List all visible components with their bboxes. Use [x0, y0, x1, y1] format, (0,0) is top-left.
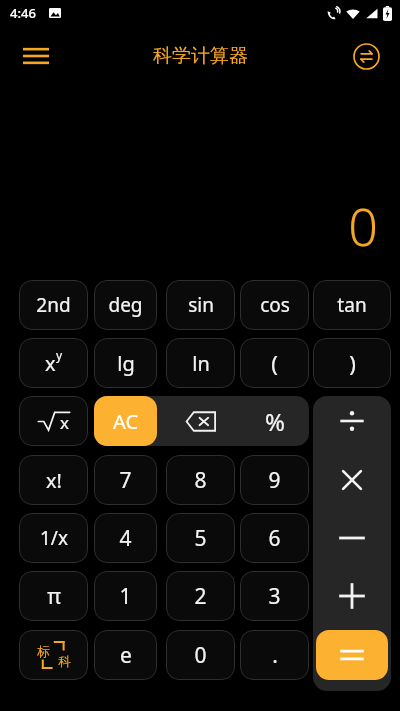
staticText: 9: [268, 466, 281, 495]
button[interactable]: 7: [94, 455, 157, 505]
staticText: AC: [113, 408, 139, 435]
button[interactable]: x!: [19, 455, 88, 505]
staticText: ): [349, 348, 356, 378]
staticText: 5: [194, 524, 207, 553]
staticText: 0: [194, 641, 207, 670]
button[interactable]: tan: [313, 280, 391, 330]
button[interactable]: 5: [166, 513, 235, 563]
staticText: (: [271, 348, 278, 378]
staticText: e: [120, 641, 132, 670]
button[interactable]: 9: [240, 455, 309, 505]
button[interactable]: ): [313, 338, 391, 388]
staticText: tan: [337, 292, 367, 318]
staticText: y: [56, 347, 63, 363]
staticText: deg: [108, 292, 143, 318]
staticText: 7: [119, 466, 132, 495]
button[interactable]: 退格: [166, 396, 235, 446]
staticText: π: [47, 582, 61, 611]
button[interactable]: 除: [313, 396, 391, 446]
button[interactable]: 按键: [19, 630, 88, 680]
staticText: 1: [119, 582, 132, 611]
button[interactable]: 2nd: [19, 280, 88, 330]
button[interactable]: 菜单: [14, 34, 58, 78]
button[interactable]: 加: [313, 571, 391, 621]
button[interactable]: 单位换算: [344, 34, 388, 78]
button[interactable]: 按键: [19, 338, 88, 388]
button[interactable]: lg: [94, 338, 157, 388]
button[interactable]: deg: [94, 280, 157, 330]
button[interactable]: .: [240, 630, 309, 680]
button[interactable]: 4: [94, 513, 157, 563]
staticText: 0: [0, 190, 378, 261]
button[interactable]: e: [94, 630, 157, 680]
button[interactable]: 按键: [19, 396, 88, 446]
staticText: cos: [260, 292, 290, 318]
staticText: 4:46: [10, 4, 36, 22]
button[interactable]: ln: [166, 338, 235, 388]
button[interactable]: cos: [240, 280, 309, 330]
staticText: x: [60, 411, 69, 434]
staticText: 科学计算器: [153, 44, 248, 68]
staticText: 2: [194, 582, 207, 611]
staticText: 3: [268, 582, 281, 611]
staticText: lg: [117, 350, 135, 377]
button[interactable]: 减: [313, 513, 391, 563]
button[interactable]: 6: [240, 513, 309, 563]
staticText: 标: [37, 643, 50, 659]
staticText: ln: [192, 350, 210, 377]
button[interactable]: %: [240, 396, 309, 446]
staticText: x!: [46, 467, 62, 494]
button[interactable]: 2: [166, 571, 235, 621]
button[interactable]: sin: [166, 280, 235, 330]
button[interactable]: (: [240, 338, 309, 388]
staticText: 1/x: [40, 525, 68, 551]
button[interactable]: 3: [240, 571, 309, 621]
button[interactable]: 8: [166, 455, 235, 505]
staticText: 6: [268, 524, 281, 553]
button[interactable]: 0: [166, 630, 235, 680]
button[interactable]: 等于: [316, 630, 388, 680]
staticText: 4: [119, 524, 132, 553]
staticText: %: [265, 405, 285, 438]
button[interactable]: 清除: [94, 396, 157, 446]
button[interactable]: 乘: [313, 455, 391, 505]
button[interactable]: π: [19, 571, 88, 621]
staticText: 2nd: [36, 292, 71, 318]
staticText: x: [45, 350, 56, 377]
staticText: sin: [188, 292, 214, 318]
staticText: 科: [58, 653, 71, 669]
staticText: 8: [194, 466, 207, 495]
staticText: .: [272, 641, 278, 670]
button[interactable]: 1/x: [19, 513, 88, 563]
button[interactable]: 1: [94, 571, 157, 621]
